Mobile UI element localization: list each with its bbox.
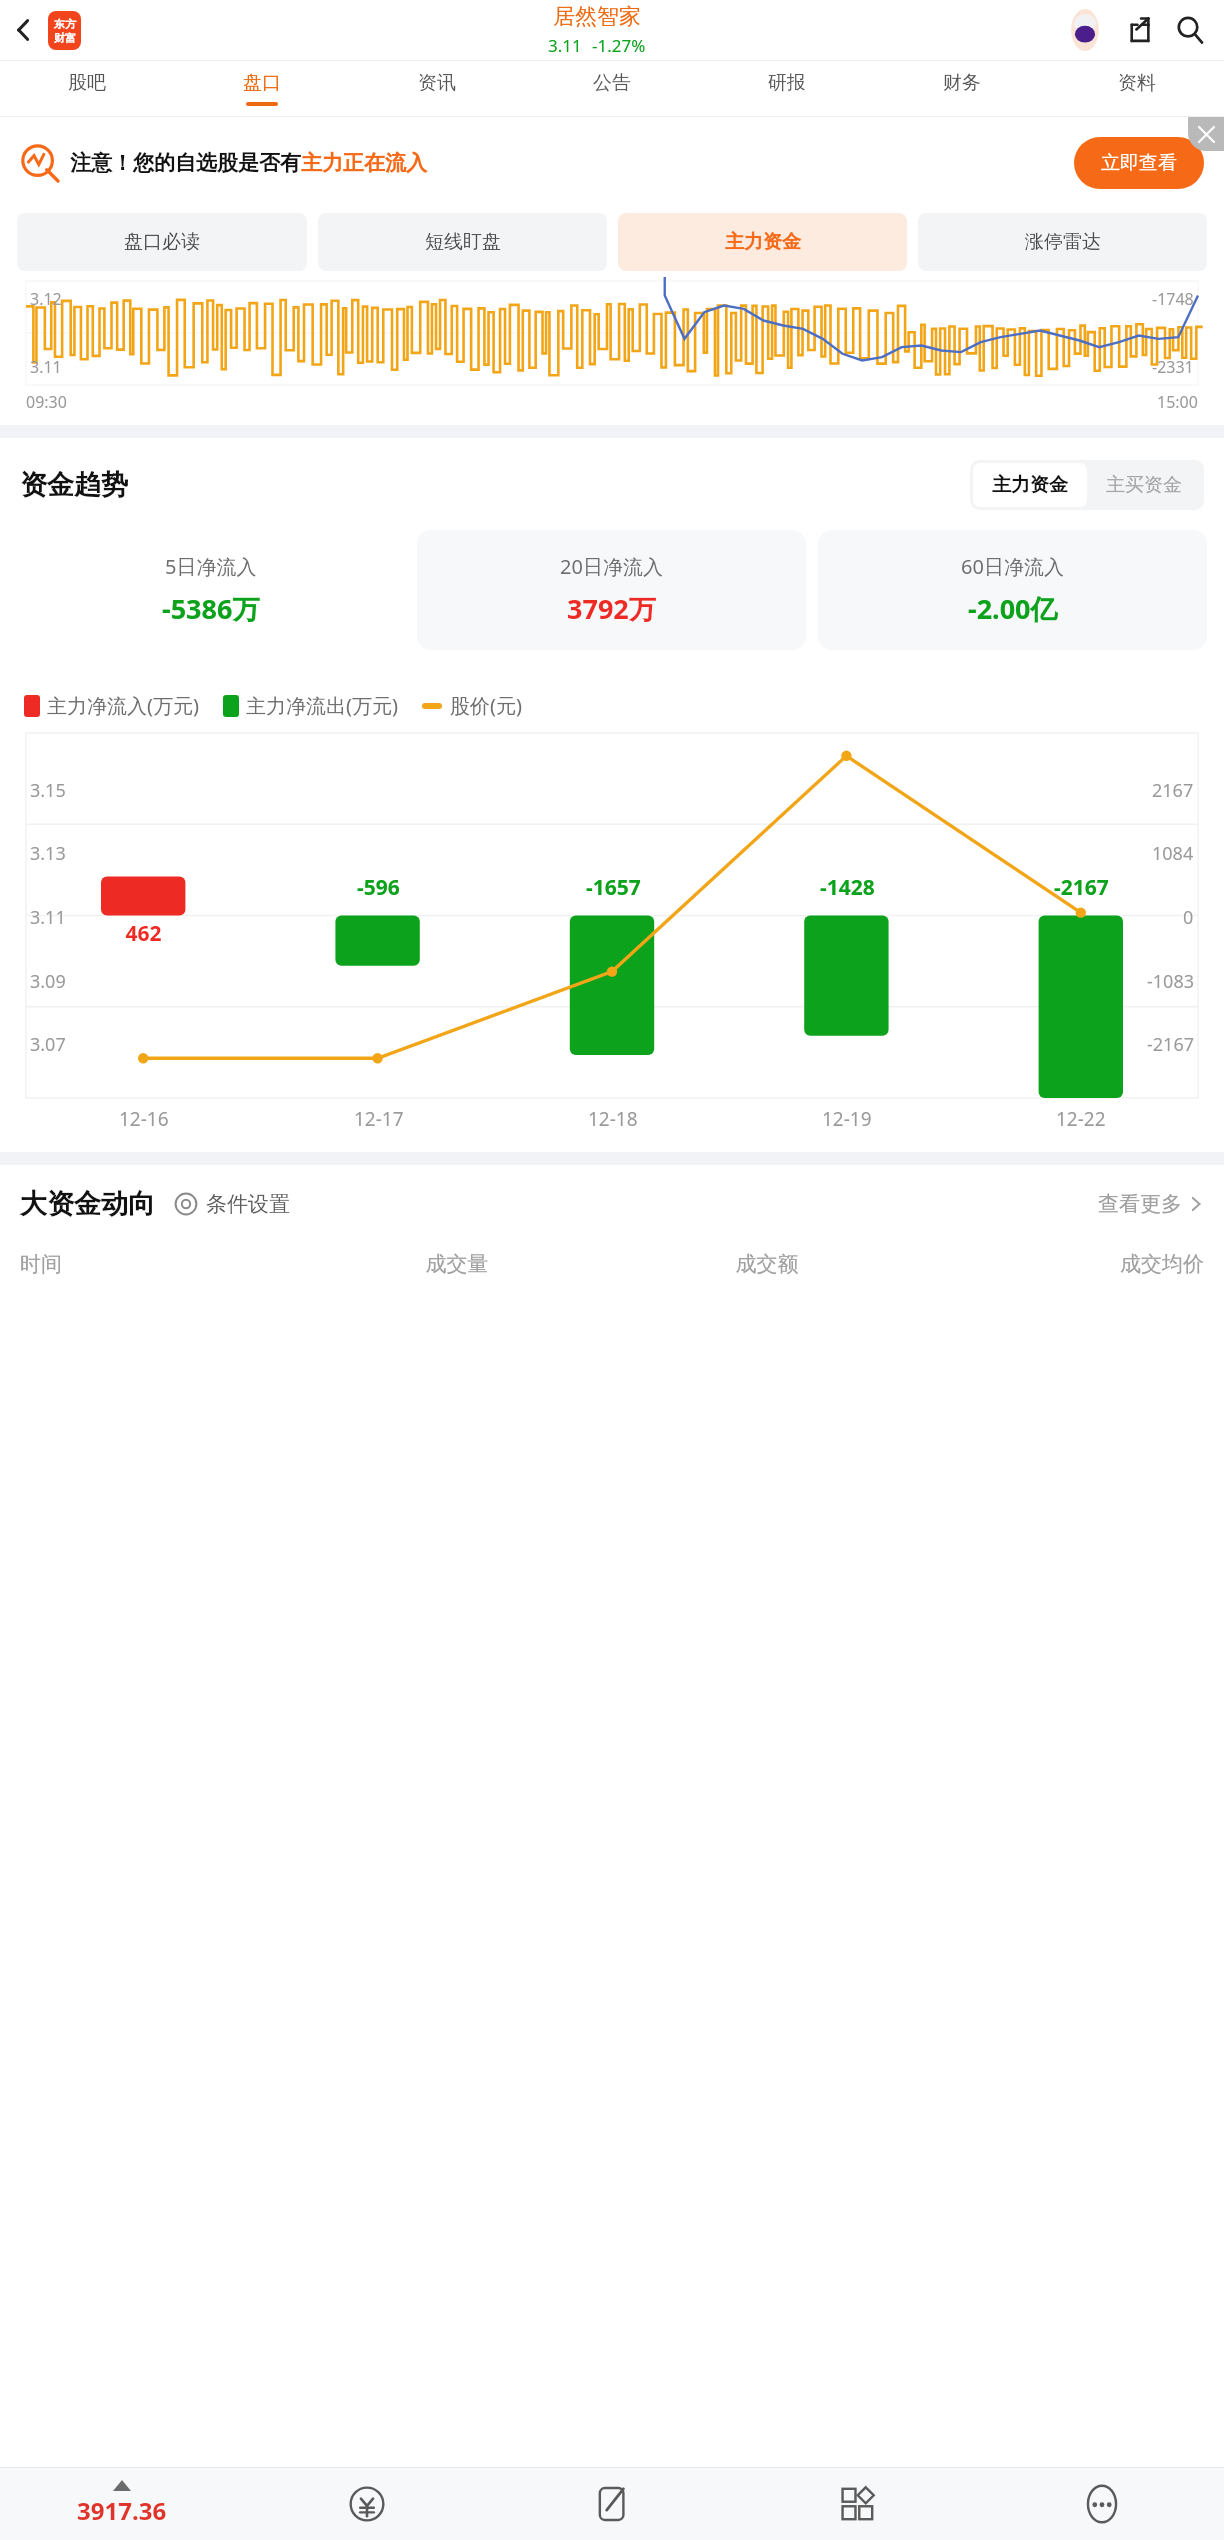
staticText: -596	[357, 873, 400, 902]
button[interactable]: 主力资金	[618, 213, 907, 271]
button[interactable]: 20日净流入	[417, 530, 806, 650]
staticText: 盘口	[243, 71, 281, 95]
staticText: 时间	[20, 1251, 302, 1277]
staticText: 成交均价	[922, 1251, 1204, 1277]
button[interactable]: 查看更多	[1098, 1191, 1204, 1217]
staticText: 12-16	[119, 1106, 169, 1132]
staticText: 立即查看	[1101, 151, 1177, 175]
button[interactable]: Apps	[734, 2467, 979, 2540]
staticText: 条件设置	[206, 1191, 290, 1217]
staticText: 3.11	[548, 34, 582, 57]
staticText: 东方	[54, 17, 76, 31]
staticText: 12-22	[1056, 1106, 1106, 1132]
button[interactable]: Share	[1118, 9, 1160, 51]
button[interactable]: 财务	[874, 61, 1049, 116]
button[interactable]: Search	[1168, 8, 1212, 52]
staticText: 12-19	[822, 1106, 872, 1132]
button[interactable]: 短线盯盘	[318, 213, 607, 271]
staticText: -2167	[1147, 1032, 1194, 1057]
staticText: 3.13	[30, 841, 66, 866]
staticText: 财富	[54, 31, 76, 45]
staticText: -1428	[820, 873, 875, 902]
staticText: 涨停雷达	[1025, 230, 1101, 254]
button[interactable]: AI assistant	[1062, 7, 1108, 53]
button[interactable]: 盘口必读	[17, 213, 307, 271]
staticText: 资讯	[418, 71, 456, 95]
staticText: -1.27%	[592, 34, 646, 57]
staticText: 3917.36	[77, 2494, 167, 2527]
staticText: -1657	[586, 873, 641, 902]
button[interactable]: East Money	[48, 11, 81, 50]
staticText: -2331	[1152, 356, 1194, 378]
staticText: 公告	[593, 71, 631, 95]
staticText: 09:30	[26, 391, 67, 413]
staticText: 3.09	[30, 969, 66, 994]
button[interactable]: Close	[1188, 117, 1224, 151]
button[interactable]: 涨停雷达	[918, 213, 1207, 271]
staticText: 大资金动向	[20, 1187, 155, 1221]
staticText: 5日净流入	[165, 553, 257, 580]
button[interactable]: 主买资金	[1106, 473, 1182, 497]
staticText: 3.11	[30, 356, 62, 378]
staticText: 短线盯盘	[425, 230, 501, 254]
staticText: 主买资金	[1106, 473, 1182, 497]
staticText: 3.07	[30, 1032, 66, 1057]
staticText: 主力净流出(万元)	[246, 692, 398, 719]
staticText: 2167	[1152, 778, 1194, 803]
staticText: -1748	[1152, 288, 1194, 310]
staticText: -2167	[1054, 873, 1109, 902]
staticText: 主力净流入(万元)	[47, 692, 199, 719]
button[interactable]: 主力资金	[992, 473, 1068, 497]
staticText: 查看更多	[1098, 1191, 1182, 1217]
staticText: 3.11	[30, 905, 66, 930]
staticText: 盘口必读	[124, 230, 200, 254]
staticText: 股价(元)	[450, 692, 522, 719]
staticText: 20日净流入	[560, 553, 663, 580]
button[interactable]: 股吧	[0, 61, 174, 116]
staticText: 12-18	[588, 1106, 638, 1132]
button[interactable]: 公告	[524, 61, 699, 116]
button[interactable]: 立即查看	[1074, 137, 1204, 189]
button[interactable]: 研报	[699, 61, 874, 116]
staticText: 资金趋势	[20, 468, 128, 502]
staticText: 60日净流入	[961, 553, 1064, 580]
button[interactable]: 3917.36	[0, 2467, 244, 2540]
staticText: 1084	[1152, 841, 1194, 866]
button[interactable]: Back	[4, 10, 44, 50]
staticText: 0	[1183, 905, 1194, 930]
staticText: -5386万	[162, 590, 260, 627]
staticText: 主力资金	[992, 473, 1068, 497]
button[interactable]: Write post	[489, 2467, 734, 2540]
staticText: 3.15	[30, 778, 66, 803]
staticText: 研报	[768, 71, 806, 95]
staticText: 主力资金	[725, 230, 801, 254]
staticText: 财务	[943, 71, 981, 95]
button[interactable]: More	[979, 2467, 1224, 2540]
staticText: 注意！您的自选股是否有	[70, 150, 301, 176]
staticText: 12-17	[354, 1106, 404, 1132]
button[interactable]: 条件设置	[173, 1191, 290, 1217]
staticText: 462	[125, 919, 162, 948]
staticText: 资料	[1118, 71, 1156, 95]
staticText: 主力正在流入	[301, 150, 427, 176]
button[interactable]: 资讯	[349, 61, 524, 116]
staticText: 3.12	[30, 288, 62, 310]
button[interactable]: 60日净流入	[818, 530, 1207, 650]
button[interactable]: 盘口	[174, 61, 349, 116]
button[interactable]: 5日净流入	[17, 530, 405, 650]
staticText: -2.00亿	[968, 590, 1058, 627]
staticText: 成交额	[612, 1251, 922, 1277]
staticText: 成交量	[302, 1251, 612, 1277]
button[interactable]: 资料	[1049, 61, 1224, 116]
staticText: 居然智家	[553, 3, 641, 31]
button[interactable]: Trade	[244, 2467, 489, 2540]
staticText: 15:00	[1157, 391, 1198, 413]
staticText: -1083	[1147, 969, 1194, 994]
staticText: 股吧	[68, 71, 106, 95]
staticText: 3792万	[567, 590, 656, 627]
